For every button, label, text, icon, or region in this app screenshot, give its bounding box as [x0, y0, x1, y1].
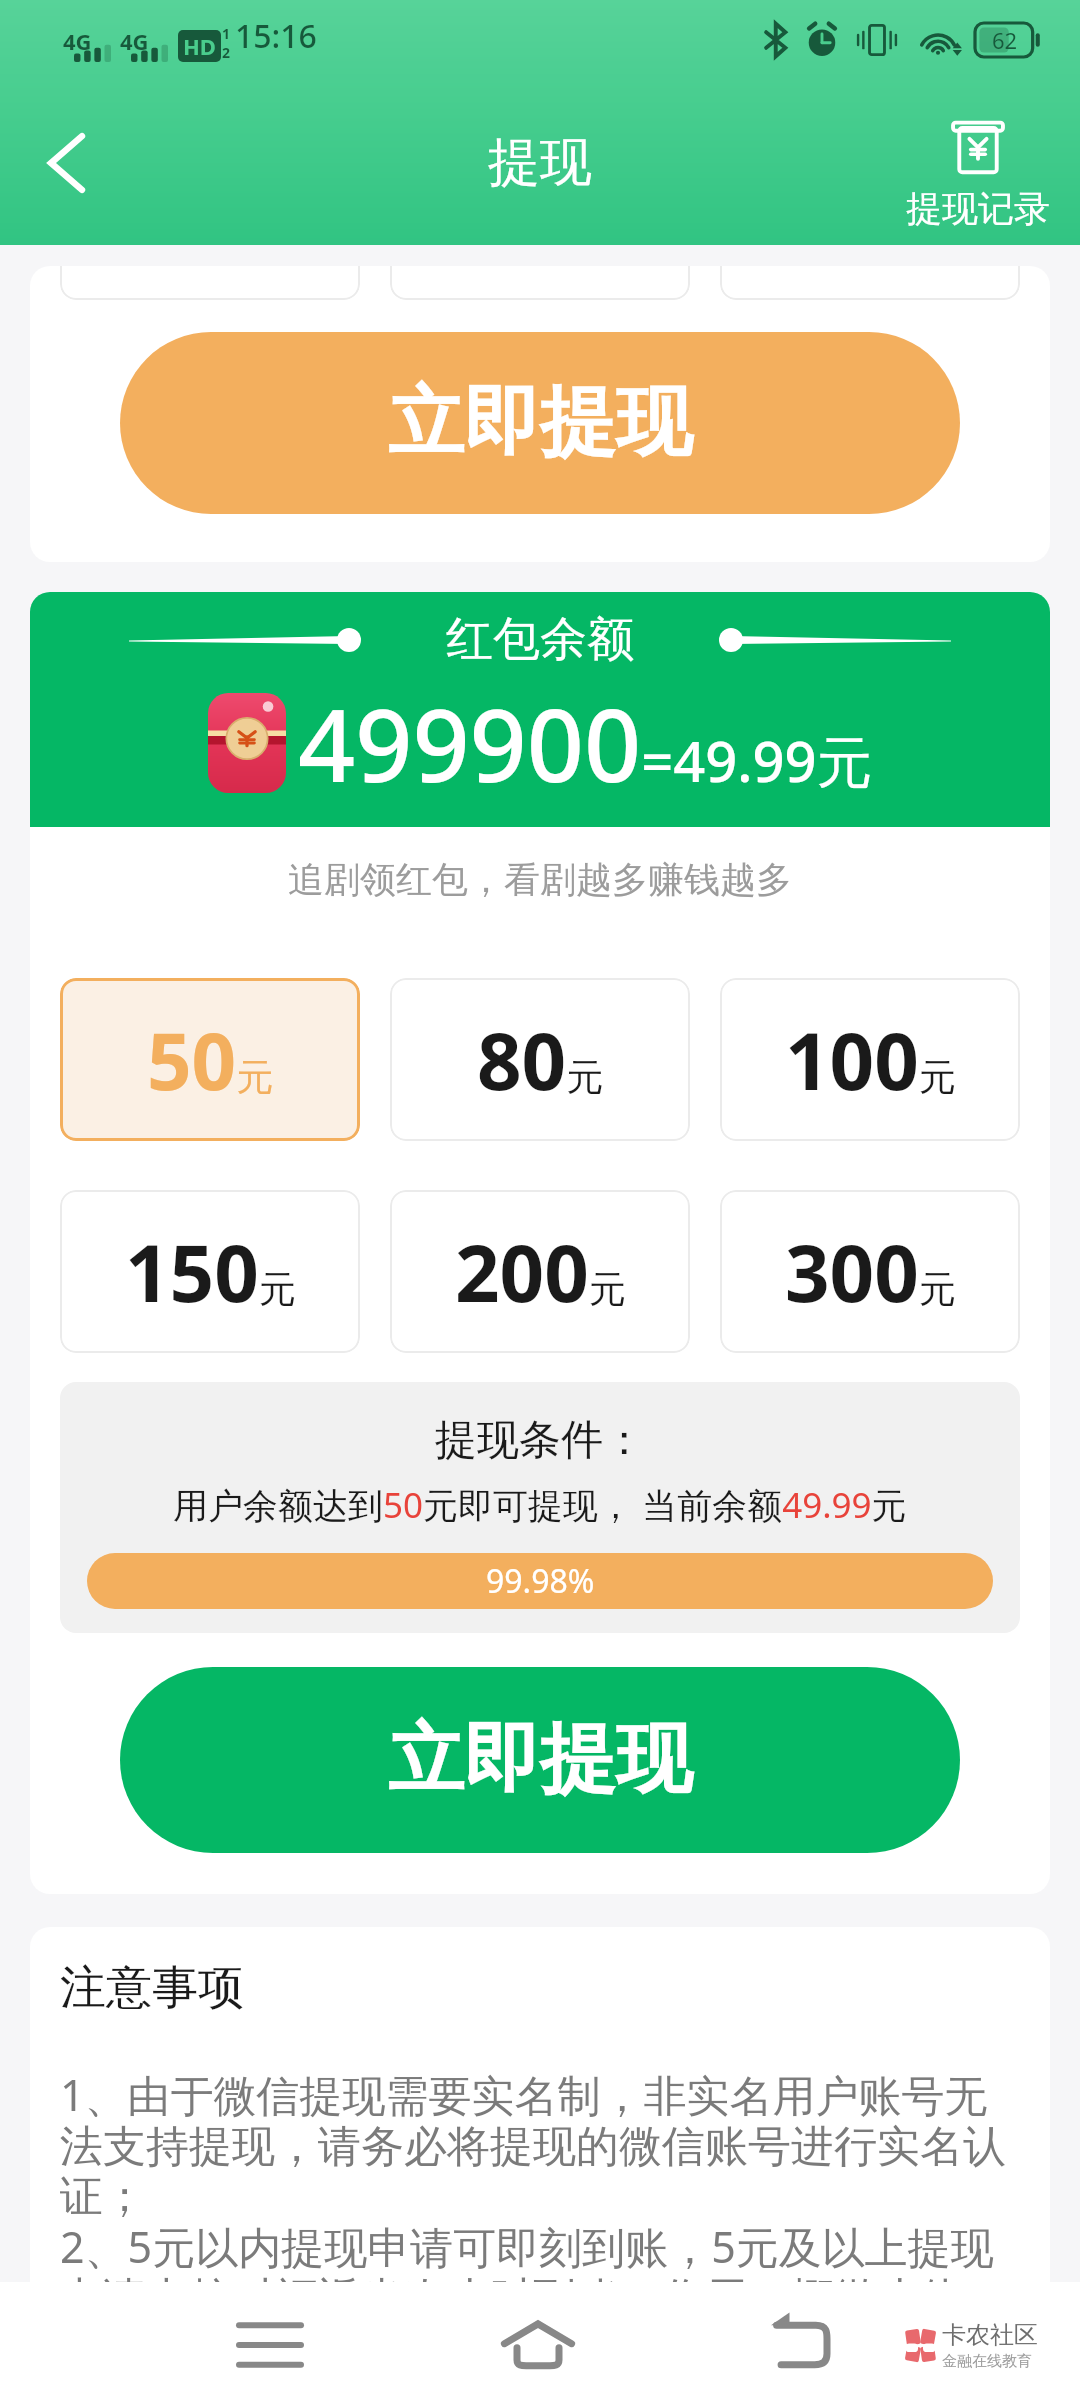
staticText: 15:16 — [235, 14, 317, 58]
staticText: 卡农社区 — [942, 2320, 1038, 2350]
staticText: 金融在线教育 — [942, 2352, 1032, 2371]
staticText: 150元 — [125, 1219, 296, 1325]
button[interactable]: Home — [483, 2290, 593, 2400]
button[interactable]: 立即提现 — [120, 332, 960, 514]
staticText: 2 — [222, 43, 231, 62]
staticText: 499900=49.99元 — [298, 675, 873, 811]
staticText: 100元 — [785, 1007, 956, 1113]
staticText: 提现 — [488, 130, 592, 196]
button[interactable]: 50元 — [60, 978, 360, 1141]
button[interactable]: Back — [26, 123, 106, 203]
staticText: 立即提现 — [388, 375, 692, 471]
staticText: 1、由于微信提现需要实名制，非实名用户账号无法支持提现，请务必将提现的微信账号进… — [60, 2065, 1020, 2326]
staticText: 追剧领红包，看剧越多赚钱越多 — [30, 857, 1050, 902]
staticText: 62 — [992, 25, 1018, 55]
button[interactable]: 300元 — [720, 1190, 1020, 1353]
staticText: 红包余额 — [446, 610, 634, 669]
staticText: 提现记录 — [906, 186, 1050, 231]
staticText: 用户余额达到50元即可提现， 当前余额49.99元 — [173, 1481, 907, 1529]
staticText: 1 — [222, 24, 231, 43]
button[interactable]: 立即提现 — [120, 1667, 960, 1853]
button[interactable] — [60, 266, 360, 300]
staticText: 立即提现 — [388, 1712, 692, 1808]
staticText: 4G — [63, 26, 92, 56]
button[interactable]: 150元 — [60, 1190, 360, 1353]
staticText: 4G — [120, 26, 149, 56]
button[interactable]: 100元 — [720, 978, 1020, 1141]
button[interactable]: 80元 — [390, 978, 690, 1141]
button[interactable] — [390, 266, 690, 300]
button[interactable]: Back — [744, 2290, 854, 2400]
button[interactable]: 提现记录 — [898, 117, 1058, 235]
staticText: 99.98% — [486, 1559, 595, 1603]
button[interactable]: 200元 — [390, 1190, 690, 1353]
staticText: 80元 — [477, 1007, 604, 1113]
staticText: HD — [183, 31, 216, 61]
button[interactable]: Recents — [215, 2290, 325, 2400]
staticText: 50元 — [147, 1007, 274, 1113]
staticText: 注意事项 — [60, 1959, 244, 2017]
button[interactable] — [720, 266, 1020, 300]
staticText: 300元 — [785, 1219, 956, 1325]
staticText: 提现条件： — [435, 1414, 645, 1467]
staticText: 200元 — [455, 1219, 626, 1325]
